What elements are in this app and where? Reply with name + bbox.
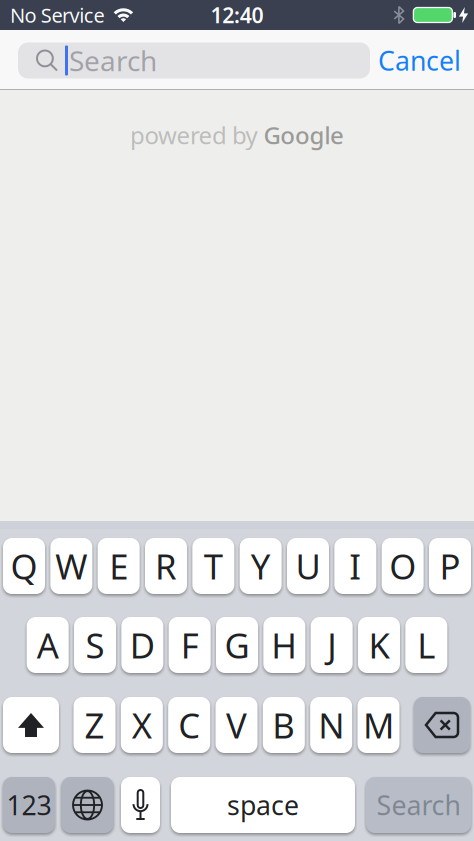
button[interactable]: 123 bbox=[3, 777, 55, 833]
button[interactable]: F bbox=[169, 617, 211, 673]
button[interactable] bbox=[414, 697, 470, 753]
button[interactable]: Y bbox=[240, 538, 282, 594]
staticText: F bbox=[181, 622, 199, 668]
staticText: M bbox=[363, 702, 394, 748]
staticText: N bbox=[318, 702, 344, 748]
staticText: No Service bbox=[10, 2, 104, 28]
staticText: Q bbox=[10, 543, 37, 589]
staticText: 12:40 bbox=[211, 1, 263, 29]
button[interactable]: Z bbox=[73, 697, 115, 753]
staticText: Google bbox=[263, 119, 344, 151]
staticText: O bbox=[389, 543, 416, 589]
button[interactable] bbox=[61, 777, 113, 833]
button[interactable]: O bbox=[382, 538, 424, 594]
button[interactable]: G bbox=[216, 617, 258, 673]
staticText: W bbox=[55, 543, 87, 589]
button[interactable]: W bbox=[50, 538, 92, 594]
button[interactable]: S bbox=[74, 617, 116, 673]
staticText: H bbox=[271, 622, 297, 668]
button[interactable]: T bbox=[192, 538, 234, 594]
staticText: V bbox=[226, 702, 247, 748]
button[interactable]: V bbox=[215, 697, 257, 753]
staticText: Cancel bbox=[378, 43, 461, 78]
button[interactable]: J bbox=[311, 617, 353, 673]
staticText: I bbox=[349, 543, 361, 589]
staticText: D bbox=[130, 622, 155, 668]
button[interactable]: P bbox=[429, 538, 471, 594]
staticText: E bbox=[109, 543, 128, 589]
button[interactable]: Search bbox=[366, 777, 471, 833]
staticText: G bbox=[224, 622, 249, 668]
staticText: Y bbox=[251, 543, 271, 589]
button[interactable]: I bbox=[334, 538, 376, 594]
staticText: B bbox=[272, 702, 295, 748]
staticText: K bbox=[368, 622, 389, 668]
staticText: J bbox=[327, 622, 336, 668]
button[interactable]: C bbox=[168, 697, 210, 753]
button[interactable]: D bbox=[121, 617, 163, 673]
staticText: Search bbox=[69, 42, 157, 79]
button[interactable]: K bbox=[358, 617, 400, 673]
staticText: L bbox=[417, 622, 435, 668]
staticText: Search bbox=[376, 787, 460, 823]
staticText: A bbox=[37, 622, 59, 668]
staticText: powered by bbox=[130, 119, 257, 151]
staticText: C bbox=[178, 702, 200, 748]
staticText: 123 bbox=[6, 787, 51, 823]
button[interactable]: space bbox=[171, 777, 355, 833]
button[interactable]: U bbox=[287, 538, 329, 594]
button[interactable]: E bbox=[98, 538, 140, 594]
staticText: T bbox=[204, 543, 223, 589]
button[interactable]: H bbox=[263, 617, 305, 673]
button[interactable]: L bbox=[405, 617, 447, 673]
button[interactable]: R bbox=[145, 538, 187, 594]
button[interactable]: A bbox=[27, 617, 69, 673]
staticText: Z bbox=[84, 702, 104, 748]
button[interactable] bbox=[121, 777, 160, 833]
button[interactable]: N bbox=[310, 697, 352, 753]
button[interactable]: Q bbox=[3, 538, 45, 594]
staticText: X bbox=[132, 702, 152, 748]
staticText: U bbox=[295, 543, 320, 589]
button[interactable] bbox=[3, 697, 59, 753]
button[interactable]: B bbox=[263, 697, 305, 753]
button[interactable]: M bbox=[357, 697, 399, 753]
button[interactable]: Cancel bbox=[378, 43, 461, 78]
staticText: space bbox=[227, 787, 299, 823]
staticText: S bbox=[85, 622, 104, 668]
button[interactable]: Search bbox=[18, 42, 370, 78]
staticText: R bbox=[155, 543, 177, 589]
staticText: P bbox=[439, 543, 460, 589]
button[interactable]: X bbox=[121, 697, 163, 753]
